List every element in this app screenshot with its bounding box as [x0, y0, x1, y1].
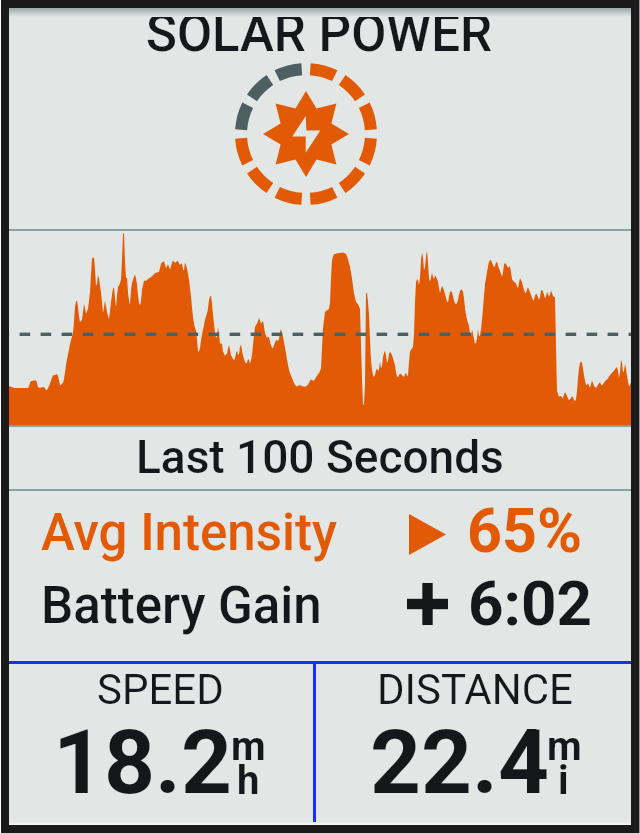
staticText: Battery Gain: [41, 576, 322, 636]
staticText: SPEED: [97, 665, 224, 714]
staticText: Last 100 Seconds: [136, 430, 504, 484]
staticText: 6:02: [468, 567, 593, 639]
staticText: i: [558, 757, 569, 804]
button[interactable]: SPEED: [9, 664, 313, 825]
staticText: 18.2: [53, 710, 232, 814]
staticText: Avg Intensity: [41, 503, 337, 563]
staticText: m: [231, 723, 266, 770]
staticText: DISTANCE: [377, 665, 573, 714]
staticText: m: [547, 723, 582, 770]
staticText: SOLAR POWER: [146, 4, 493, 64]
staticText: 65%: [467, 495, 583, 566]
staticText: h: [237, 757, 260, 804]
button[interactable]: SOLAR POWER: [9, 8, 631, 221]
button[interactable]: Avg Intensity: [9, 491, 631, 563]
staticText: 22.4: [370, 710, 549, 814]
button[interactable]: Last 100 Seconds: [9, 427, 631, 489]
button[interactable]: Battery Gain: [9, 563, 631, 635]
button[interactable]: DISTANCE: [316, 664, 512, 825]
other: Solar power: [235, 63, 377, 205]
